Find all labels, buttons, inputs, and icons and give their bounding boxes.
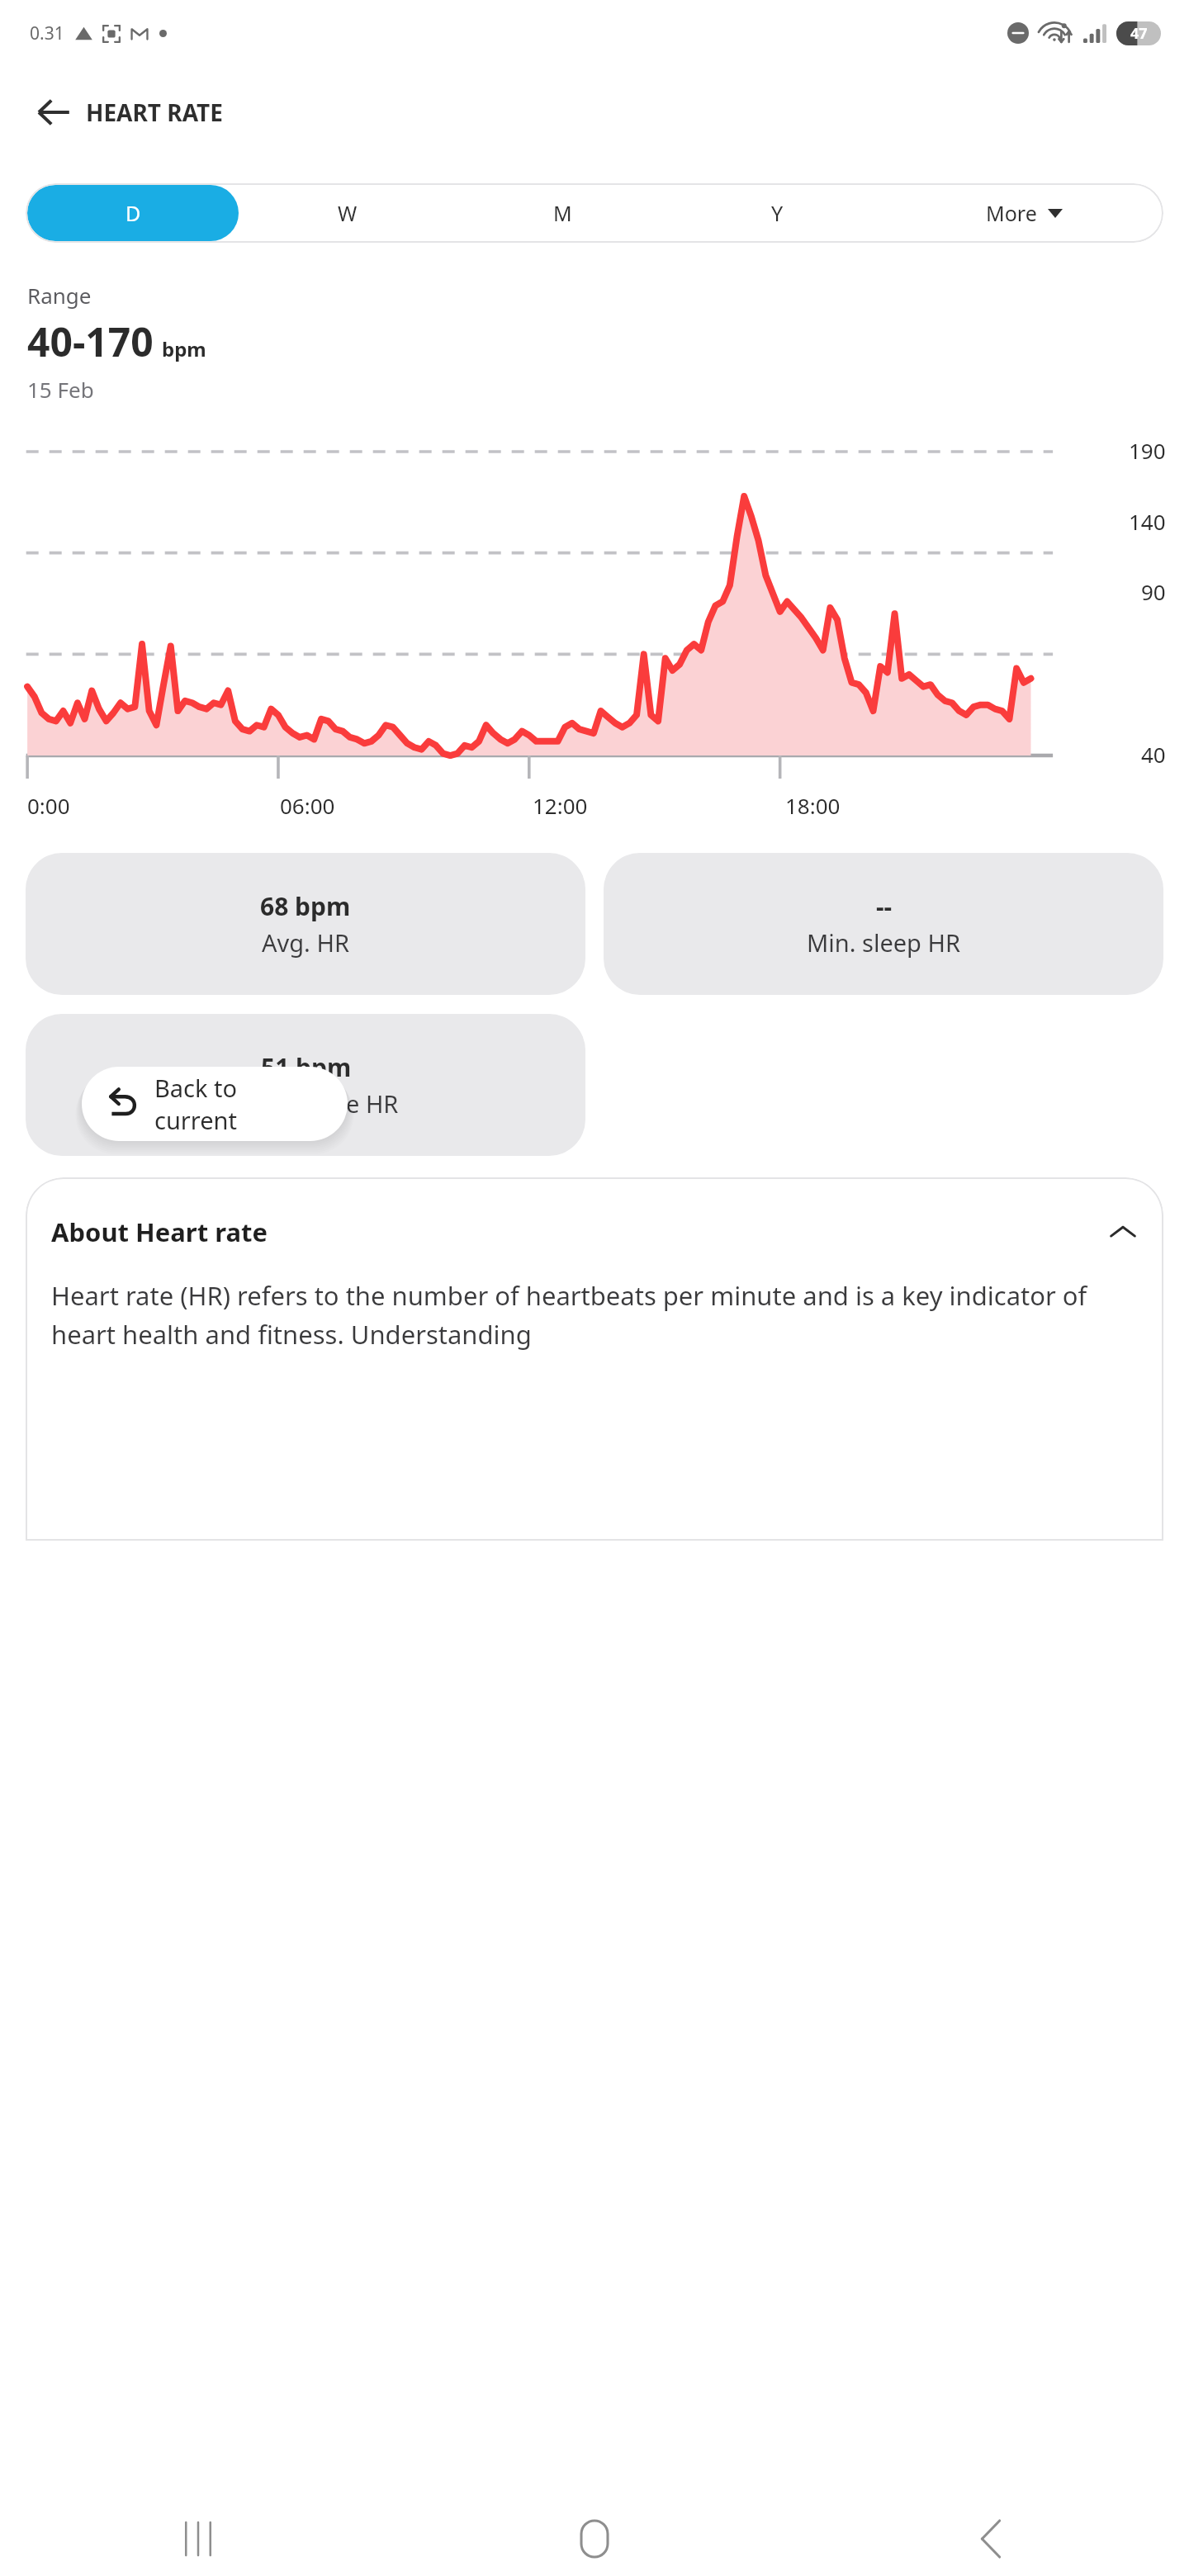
staticText: Range bbox=[27, 281, 92, 310]
button[interactable]: -- bbox=[604, 853, 1163, 995]
staticText: Min. sleep HR bbox=[807, 926, 961, 959]
staticText: 0.31 bbox=[30, 21, 64, 45]
staticText: -- bbox=[876, 889, 893, 923]
staticText: Avg. HR bbox=[262, 926, 349, 959]
staticText: M bbox=[553, 199, 572, 227]
staticText: 190 bbox=[1129, 436, 1166, 465]
staticText: bpm bbox=[162, 335, 206, 362]
staticText: 40 bbox=[1141, 740, 1166, 769]
staticText: HEART RATE bbox=[86, 97, 223, 128]
button[interactable]: W bbox=[242, 185, 453, 241]
staticText: 90 bbox=[1141, 577, 1166, 606]
staticText: Back to current bbox=[154, 1072, 323, 1136]
button[interactable]: Back bbox=[26, 85, 81, 140]
staticText: 18:00 bbox=[785, 791, 841, 820]
button[interactable]: More bbox=[884, 183, 1163, 243]
staticText: W bbox=[338, 199, 358, 227]
button[interactable]: Recents bbox=[144, 2502, 252, 2576]
staticText: More bbox=[986, 199, 1037, 227]
button[interactable]: 51 bpm bbox=[26, 1014, 585, 1156]
button[interactable]: Back to current bbox=[82, 1067, 348, 1141]
button[interactable]: 68 bpm bbox=[26, 853, 585, 995]
staticText: 0:00 bbox=[27, 791, 70, 820]
button[interactable]: M bbox=[457, 185, 668, 241]
staticText: 12:00 bbox=[533, 791, 588, 820]
other: Collapse bbox=[1108, 1217, 1138, 1247]
staticText: 06:00 bbox=[280, 791, 335, 820]
staticText: 140 bbox=[1129, 507, 1166, 536]
button[interactable]: D bbox=[27, 185, 239, 241]
staticText: 68 bpm bbox=[260, 889, 351, 923]
staticText: 15 Feb bbox=[27, 375, 94, 404]
staticText: Heart rate (HR) refers to the number of … bbox=[51, 1278, 1138, 1352]
staticText: About Heart rate bbox=[51, 1215, 268, 1249]
staticText: D bbox=[126, 199, 141, 227]
button[interactable]: Home bbox=[541, 2502, 648, 2576]
button[interactable]: Back bbox=[937, 2502, 1045, 2576]
button[interactable]: Y bbox=[671, 185, 883, 241]
staticText: 40-170 bbox=[27, 315, 154, 368]
staticText: 51 bpm bbox=[261, 1050, 352, 1084]
staticText: 47 bbox=[1130, 23, 1148, 44]
button[interactable]: About Heart rate bbox=[51, 1205, 1138, 1258]
staticText: Y bbox=[771, 199, 784, 227]
staticText: Min. daytime HR bbox=[213, 1087, 399, 1120]
